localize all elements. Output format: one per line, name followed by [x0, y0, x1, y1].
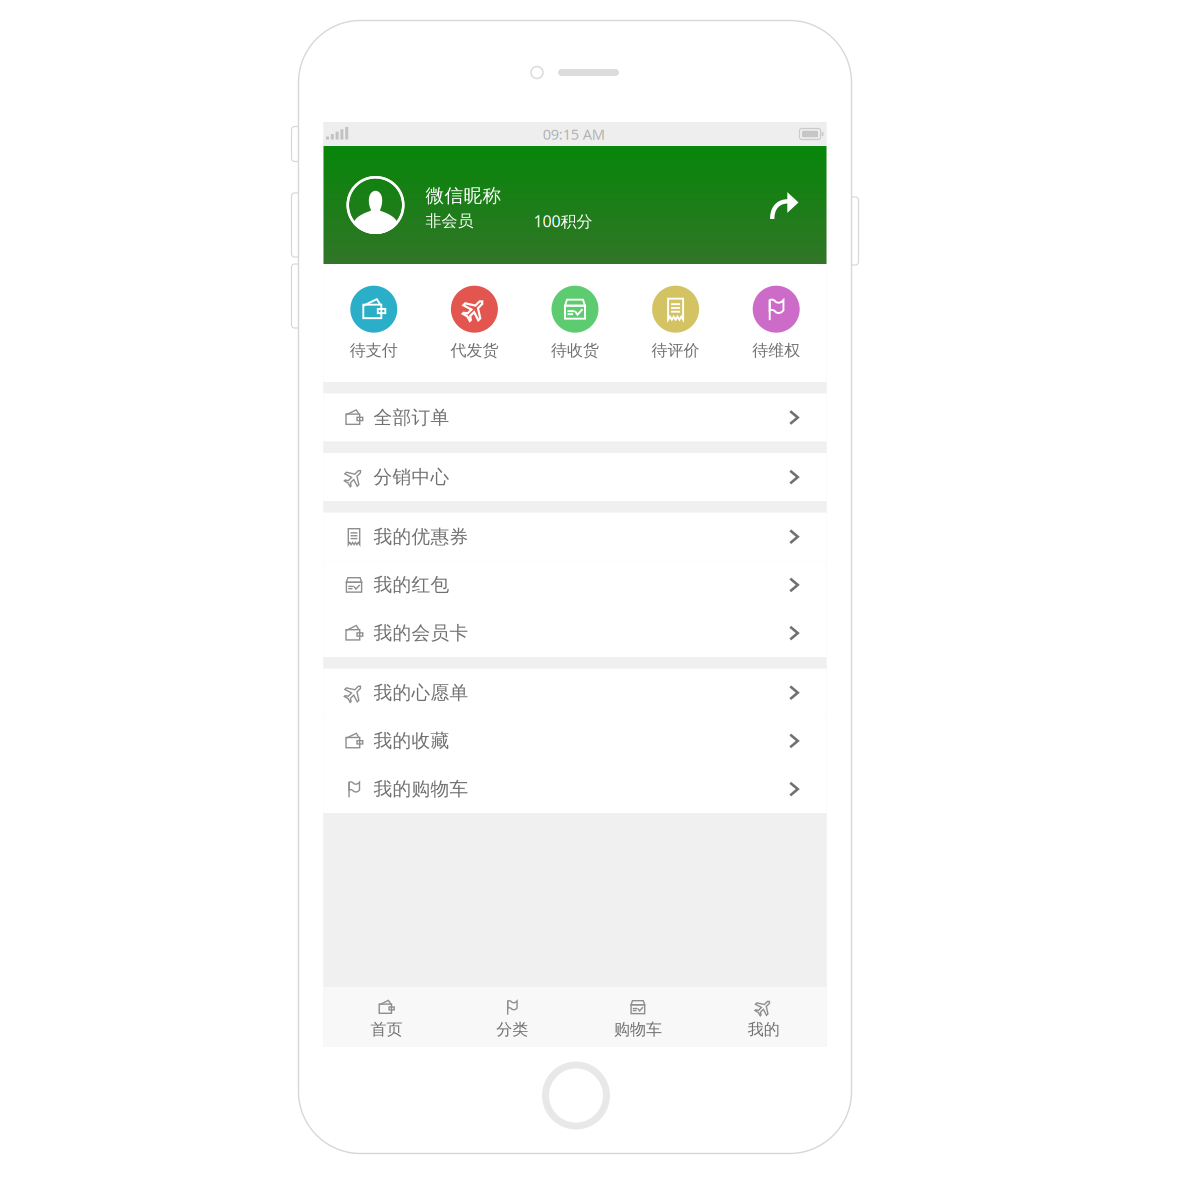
button[interactable]: 待评价: [625, 275, 726, 370]
staticText: 待评价: [652, 341, 700, 360]
button[interactable]: 我的红包: [323, 561, 826, 609]
staticText: 微信昵称: [425, 184, 501, 207]
staticText: 待收货: [551, 341, 599, 360]
staticText: 待维权: [752, 341, 800, 360]
staticText: 100积分: [533, 210, 592, 231]
staticText: 我的心愿单: [373, 681, 468, 704]
staticText: 待支付: [350, 341, 398, 360]
button[interactable]: 全部订单: [323, 393, 826, 442]
button[interactable]: 分类: [449, 987, 575, 1047]
staticText: 我的红包: [373, 573, 449, 596]
staticText: 我的优惠券: [373, 525, 468, 548]
staticText: 非会员: [425, 211, 473, 231]
button[interactable]: Share: [768, 189, 800, 221]
staticText: 首页: [370, 1020, 402, 1039]
staticText: 我的: [748, 1020, 780, 1039]
button[interactable]: 我的优惠券: [323, 513, 826, 561]
staticText: 09:15 AM: [543, 124, 605, 144]
button[interactable]: 分销中心: [323, 453, 826, 501]
staticText: 购物车: [614, 1020, 662, 1039]
button[interactable]: 我的会员卡: [323, 609, 826, 657]
staticText: 我的收藏: [373, 729, 449, 752]
button[interactable]: 购物车: [575, 987, 701, 1047]
button[interactable]: 我的购物车: [323, 765, 826, 813]
button[interactable]: 待维权: [726, 275, 826, 370]
button[interactable]: 代发货: [424, 275, 525, 370]
button[interactable]: 我的: [701, 987, 827, 1047]
staticText: 分销中心: [373, 466, 449, 488]
staticText: 全部订单: [373, 406, 449, 429]
button[interactable]: 首页: [323, 987, 449, 1047]
button[interactable]: 我的心愿单: [323, 669, 826, 717]
staticText: 我的会员卡: [373, 622, 468, 644]
staticText: 我的购物车: [373, 778, 468, 800]
button[interactable]: 待收货: [525, 275, 625, 370]
staticText: 代发货: [450, 341, 498, 360]
staticText: 分类: [496, 1020, 528, 1039]
button[interactable]: 待支付: [323, 275, 424, 370]
button[interactable]: 我的收藏: [323, 717, 826, 765]
